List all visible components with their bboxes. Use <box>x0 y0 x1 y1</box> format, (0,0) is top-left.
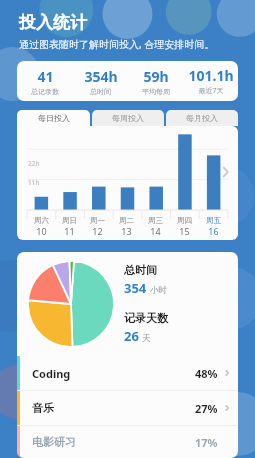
button[interactable]: 电影研习 <box>17 426 238 458</box>
staticText: 12 <box>92 225 103 237</box>
staticText: 总记录数 <box>31 87 59 96</box>
staticText: 周日 <box>62 216 77 225</box>
staticText: 15 <box>179 225 190 237</box>
staticText: 11h <box>28 178 40 187</box>
staticText: 101.1h <box>188 66 234 85</box>
button[interactable]: 音乐 <box>17 391 238 425</box>
staticText: 354 <box>124 279 147 297</box>
staticText: 59h <box>143 67 169 86</box>
staticText: 周六 <box>34 216 49 225</box>
staticText: 通过图表随时了解时间投入, 合理安排时间。 <box>19 37 215 51</box>
staticText: 17% <box>195 435 218 450</box>
staticText: 音乐 <box>32 401 54 415</box>
button[interactable]: 每周投入 <box>92 110 164 126</box>
staticText: 投入统计 <box>19 12 87 33</box>
staticText: 记录天数 <box>124 311 168 325</box>
staticText: 周五 <box>206 216 221 225</box>
button[interactable]: 41 <box>17 61 238 101</box>
button[interactable]: 22h <box>17 126 238 240</box>
staticText: 周一 <box>90 216 105 225</box>
staticText: 22h <box>28 159 40 168</box>
staticText: 小时 <box>150 285 167 296</box>
staticText: 最近7天 <box>198 86 224 96</box>
staticText: Coding <box>32 366 71 381</box>
staticText: 13 <box>121 225 132 237</box>
button[interactable]: Coding <box>17 356 238 390</box>
staticText: 26 <box>124 327 139 345</box>
staticText: 354h <box>84 67 118 86</box>
staticText: 周四 <box>177 216 192 225</box>
staticText: 16 <box>208 225 219 237</box>
staticText: 48% <box>195 366 218 381</box>
staticText: 周三 <box>148 216 163 225</box>
staticText: 每周投入 <box>112 113 144 123</box>
staticText: 总时间 <box>124 263 157 277</box>
staticText: 14 <box>150 225 161 237</box>
staticText: 41 <box>37 67 54 86</box>
staticText: 11 <box>64 225 75 237</box>
staticText: 平均每周 <box>142 87 170 96</box>
staticText: 总时间 <box>90 87 111 96</box>
button[interactable]: 每日投入 <box>17 110 90 126</box>
staticText: 每月投入 <box>186 113 218 123</box>
staticText: 10 <box>36 225 47 237</box>
staticText: 电影研习 <box>32 435 76 449</box>
staticText: 27% <box>195 401 218 416</box>
staticText: 天 <box>142 333 151 344</box>
staticText: 周二 <box>119 216 134 225</box>
button[interactable]: 每月投入 <box>166 110 238 126</box>
staticText: 每日投入 <box>38 113 70 123</box>
